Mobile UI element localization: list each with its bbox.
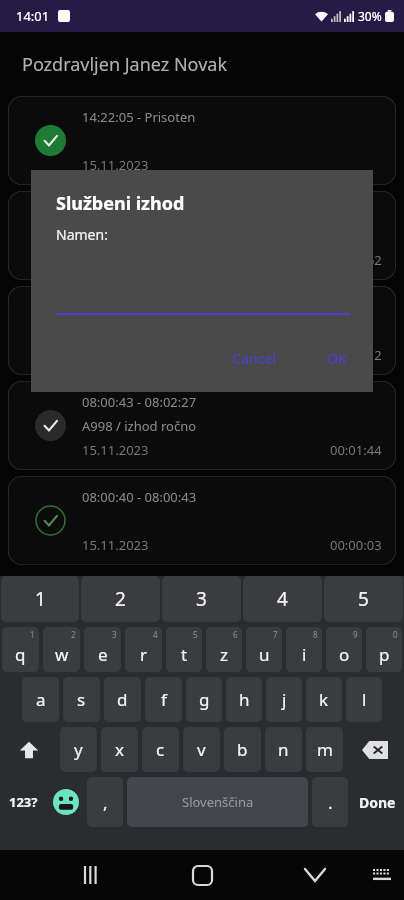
button[interactable]: 08:00:43 - 08:02:27	[8, 381, 396, 470]
staticText: ...:12	[353, 346, 382, 364]
staticText: s	[77, 688, 86, 711]
button[interactable]: h	[226, 677, 262, 722]
button[interactable]: 7	[246, 627, 282, 672]
button[interactable]: 2	[43, 627, 80, 672]
button[interactable]: b	[224, 727, 261, 772]
button[interactable]: Done	[352, 777, 402, 827]
staticText: i	[302, 643, 307, 666]
button[interactable]: 3	[162, 576, 241, 622]
button[interactable]: l	[346, 677, 382, 722]
button[interactable]: 0	[366, 627, 402, 672]
staticText: 9	[353, 629, 358, 640]
button[interactable]: 5	[324, 576, 403, 622]
staticText: 2	[115, 586, 126, 612]
staticText: 08:00:43 - 08:02:27	[82, 393, 197, 411]
staticText: e	[98, 643, 108, 666]
staticText: 3	[112, 629, 117, 640]
staticText: Službeni izhod	[56, 191, 185, 216]
button[interactable]: 3	[84, 627, 121, 672]
button[interactable]: Cancel	[220, 343, 289, 374]
button[interactable]: 1	[2, 627, 39, 672]
button[interactable]: v	[183, 727, 220, 772]
staticText: 00:00:03	[330, 536, 382, 554]
button[interactable]: ...:12	[8, 286, 396, 375]
staticText: d	[117, 688, 128, 711]
staticText: 14:22:05 - Prisoten	[82, 108, 196, 126]
button[interactable]: Slovenščina	[127, 777, 308, 827]
staticText: Namen:	[56, 225, 108, 244]
staticText: 3	[196, 586, 207, 612]
staticText: w	[55, 643, 69, 666]
staticText: 4	[277, 586, 288, 612]
button[interactable]: x	[101, 727, 138, 772]
staticText: 08:00:40 - 08:00:43	[82, 488, 197, 506]
button[interactable]: Backspace	[347, 727, 402, 772]
staticText: 2	[71, 629, 76, 640]
button[interactable]: j	[266, 677, 302, 722]
staticText: h	[239, 688, 250, 711]
staticText: y	[74, 738, 83, 761]
button[interactable]: k	[306, 677, 342, 722]
staticText: 0	[393, 629, 398, 640]
staticText: 8	[313, 629, 318, 640]
button[interactable]: 123?	[2, 777, 45, 827]
staticText: .	[328, 791, 333, 814]
staticText: v	[197, 738, 206, 761]
button[interactable]: 14:22:05 - Prisoten	[8, 96, 396, 185]
button[interactable]: g	[186, 677, 222, 722]
button[interactable]: 4	[125, 627, 162, 672]
staticText: 6	[233, 629, 238, 640]
button[interactable]: Shift	[2, 727, 56, 772]
staticText: c	[156, 738, 165, 761]
button[interactable]: 5	[166, 627, 202, 672]
button[interactable]: 2	[81, 576, 160, 622]
button[interactable]: Emoji	[49, 777, 83, 827]
button[interactable]: n	[265, 727, 302, 772]
button[interactable]: Home	[182, 855, 222, 895]
staticText: 4	[153, 629, 158, 640]
staticText: o	[339, 643, 350, 666]
staticText: ,	[103, 791, 108, 814]
button[interactable]: .	[312, 777, 348, 827]
button[interactable]: Recents	[72, 855, 112, 895]
staticText: 7	[273, 629, 278, 640]
staticText: 5	[193, 629, 198, 640]
button[interactable]: s	[63, 677, 100, 722]
button[interactable]: OK	[315, 343, 359, 374]
button[interactable]: c	[142, 727, 179, 772]
button[interactable]: m	[306, 727, 343, 772]
staticText: g	[199, 688, 210, 711]
button[interactable]: y	[60, 727, 97, 772]
button[interactable]: d	[104, 677, 141, 722]
button[interactable]: Switch keyboard	[363, 856, 401, 894]
staticText: 00:01:44	[330, 441, 382, 459]
button[interactable]: 1	[1, 576, 79, 622]
staticText: n	[278, 738, 289, 761]
button[interactable]: 6	[206, 627, 242, 672]
staticText: m	[317, 738, 333, 761]
staticText: r	[140, 643, 148, 666]
staticText: a	[36, 688, 46, 711]
button[interactable]: ,	[87, 777, 123, 827]
staticText: j	[282, 688, 287, 711]
staticText: 15.11.2023	[82, 536, 149, 554]
staticText: k	[319, 688, 329, 711]
button[interactable]: 4	[243, 576, 322, 622]
staticText: 15.11.2023	[82, 441, 149, 459]
staticText: 30%	[358, 8, 382, 24]
button[interactable]: Hide keyboard	[295, 855, 335, 895]
staticText: 1	[35, 586, 46, 612]
staticText: Slovenščina	[182, 793, 254, 811]
staticText: Cancel	[232, 349, 277, 368]
staticText: z	[220, 643, 228, 666]
button[interactable]: 08:00:40 - 08:00:43	[8, 476, 396, 565]
button[interactable]: ...:52	[8, 191, 396, 280]
staticText: l	[362, 688, 367, 711]
button[interactable]: a	[22, 677, 59, 722]
button[interactable]: f	[145, 677, 182, 722]
button[interactable]: 9	[326, 627, 362, 672]
button[interactable]: 8	[286, 627, 322, 672]
staticText: Done	[359, 793, 396, 812]
staticText: 14:01	[16, 7, 50, 25]
staticText: q	[15, 643, 26, 666]
